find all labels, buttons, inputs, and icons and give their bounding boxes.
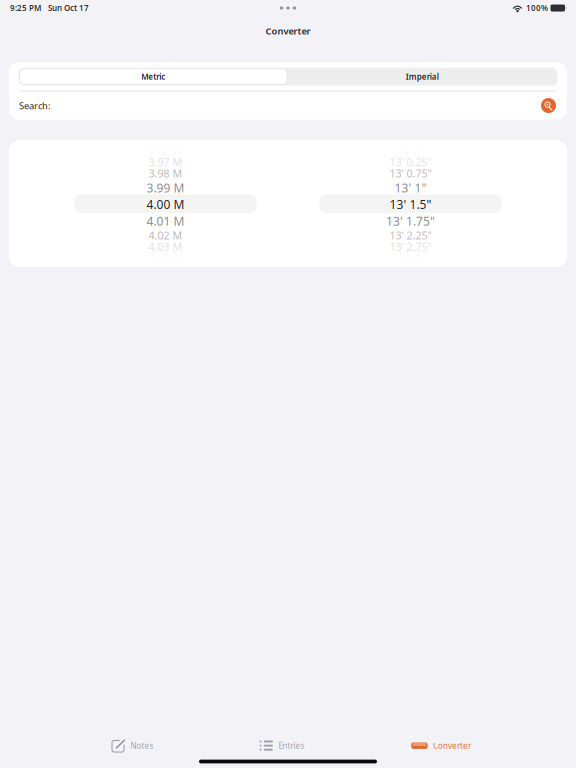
staticText: Notes: [130, 740, 153, 751]
staticText: 13' 2.75": [389, 240, 431, 254]
staticText: 4.03 M: [148, 240, 182, 254]
button[interactable]: Imperial: [287, 68, 557, 86]
staticText: 4.00 M: [146, 196, 184, 212]
button[interactable]: Notes: [111, 735, 260, 757]
staticText: Search:: [19, 99, 51, 112]
staticText: 13' 1.75": [386, 213, 435, 229]
staticText: Converter: [433, 740, 471, 751]
staticText: 3.99 M: [146, 180, 184, 196]
staticText: 13' 2.25": [389, 228, 431, 243]
staticText: 100%: [526, 3, 548, 13]
button[interactable]: Entries: [260, 735, 411, 757]
button[interactable]: Search: [537, 94, 560, 117]
staticText: Sun Oct 17: [48, 3, 89, 13]
staticText: 9:25 PM: [10, 3, 41, 13]
staticText: 4.02 M: [148, 228, 182, 243]
staticText: 4.04 M: [148, 247, 182, 261]
staticText: 13' 3": [397, 247, 424, 261]
staticText: 13' 0": [397, 147, 424, 162]
staticText: Metric: [141, 71, 165, 82]
staticText: 13' 0.25": [389, 155, 431, 169]
staticText: 3.97 M: [148, 155, 182, 169]
staticText: Imperial: [406, 71, 439, 82]
button[interactable]: Converter: [411, 735, 471, 757]
staticText: 13' 1.5": [389, 196, 431, 212]
staticText: 3.96 M: [148, 147, 182, 162]
staticText: 13' 0.75": [389, 166, 431, 180]
button[interactable]: Metric: [19, 68, 287, 86]
staticText: 13' 1": [394, 180, 426, 196]
staticText: Converter: [265, 25, 310, 37]
staticText: Entries: [278, 740, 304, 751]
staticText: 3.98 M: [148, 166, 182, 180]
staticText: 4.01 M: [146, 213, 184, 229]
